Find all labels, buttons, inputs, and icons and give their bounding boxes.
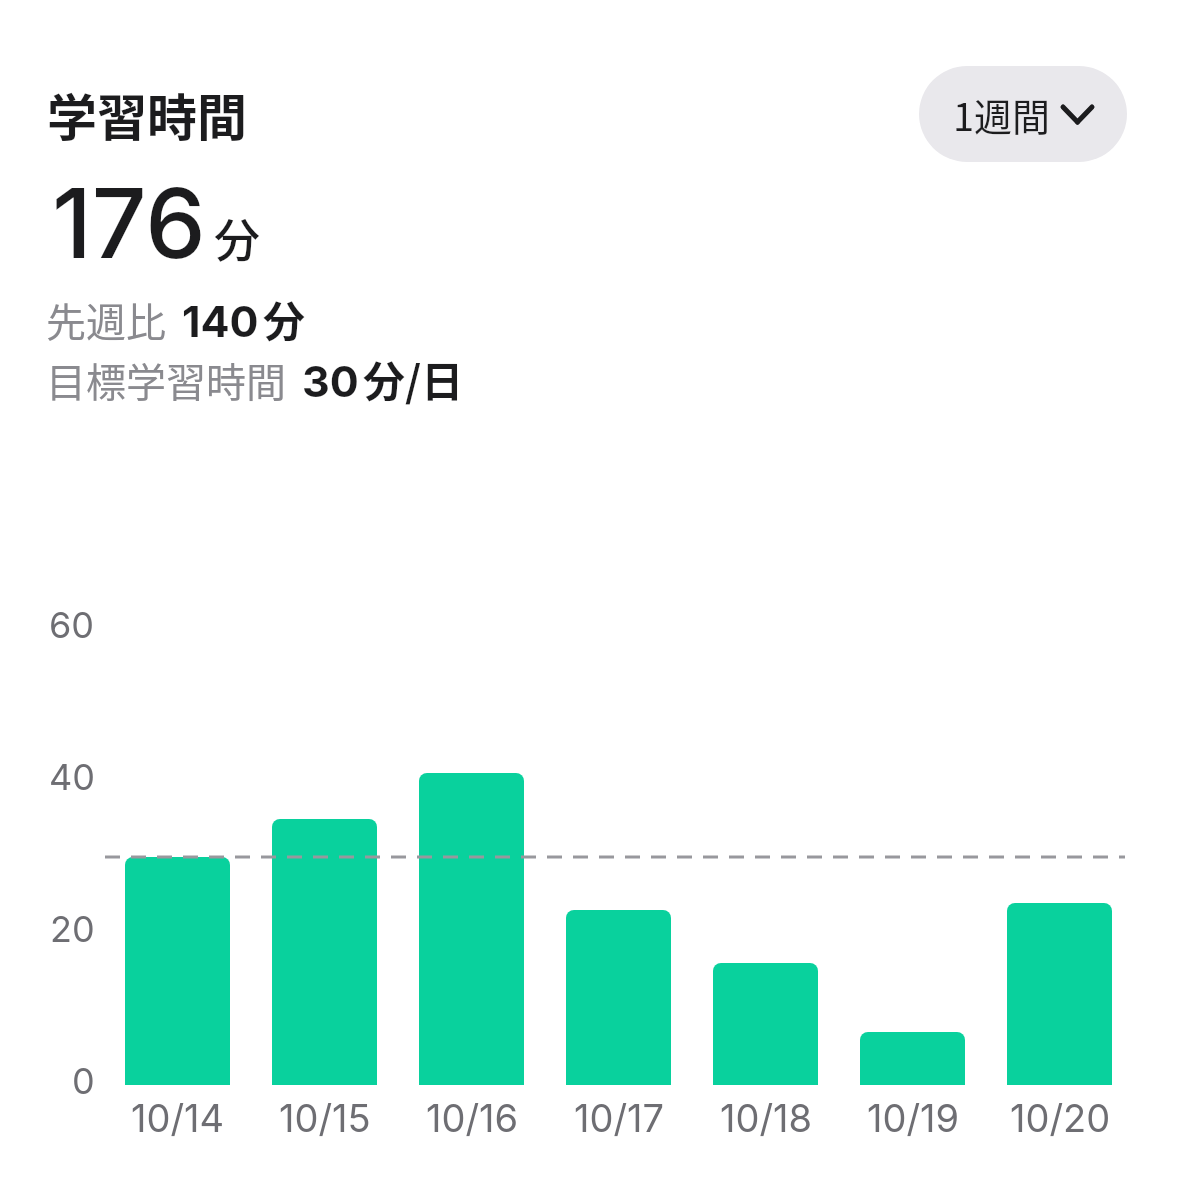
staticText: 分 (214, 204, 260, 271)
staticText: 分/日 (363, 348, 464, 409)
button[interactable]: 1週間 (919, 66, 1127, 162)
staticText: 学習時間 (47, 78, 247, 150)
staticText: 10/14 (131, 1095, 225, 1141)
staticText: 分 (263, 288, 306, 349)
staticText: 0 (72, 1059, 95, 1103)
staticText: 140 (182, 295, 259, 347)
staticText: 10/16 (426, 1095, 519, 1141)
staticText: 176 (52, 165, 206, 281)
staticText: 10/19 (867, 1095, 960, 1141)
staticText: 60 (49, 603, 95, 647)
staticText: 目標学習時間 (46, 351, 286, 409)
staticText: 30 (302, 355, 359, 407)
staticText: 10/15 (279, 1095, 371, 1141)
staticText: 10/18 (720, 1095, 813, 1141)
staticText: 先週比 (46, 291, 166, 349)
staticText: 10/17 (574, 1095, 665, 1141)
staticText: 10/20 (1010, 1095, 1111, 1141)
staticText: 1週間 (953, 87, 1051, 142)
staticText: 20 (50, 907, 95, 951)
staticText: 40 (49, 755, 95, 799)
